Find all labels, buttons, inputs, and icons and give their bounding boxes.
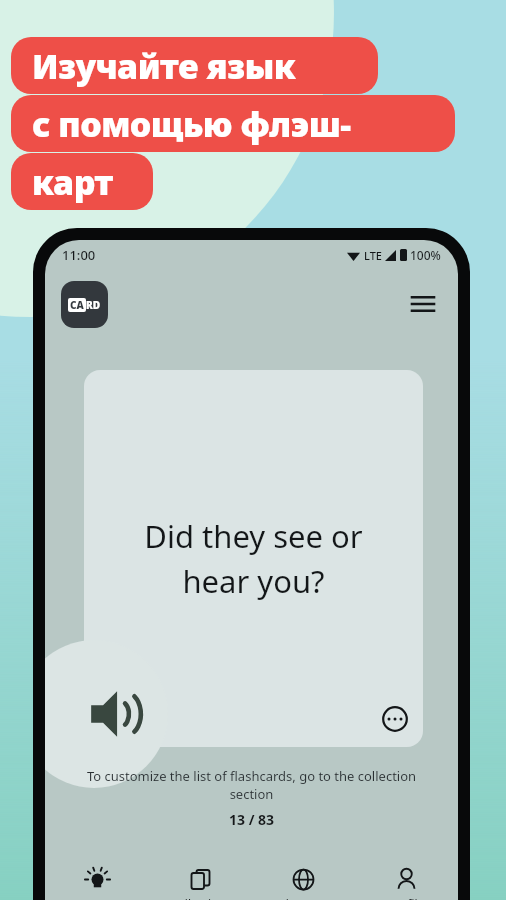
staticText: RD [86, 298, 101, 312]
staticText: Collections [170, 896, 232, 900]
staticText: Bloggers [278, 896, 329, 900]
staticText: Profile [388, 896, 425, 900]
staticText: 11:00 [62, 246, 96, 264]
staticText: To customize the list of flashcards, go … [83, 767, 420, 803]
staticText: LTE [364, 248, 382, 263]
staticText: Изучайте язык [32, 43, 296, 89]
staticText: CA [70, 298, 84, 312]
staticText: 13 / 83 [229, 810, 275, 829]
button[interactable]: Bloggers [252, 863, 355, 900]
staticText: 100% [410, 247, 441, 263]
button[interactable]: Learn [45, 863, 149, 900]
button[interactable]: Did they see or hear you? [84, 370, 423, 747]
button[interactable]: Collections [149, 863, 252, 900]
staticText: Did they see or hear you? [144, 515, 363, 602]
button[interactable]: More options [381, 705, 409, 733]
button[interactable]: Play audio [45, 640, 168, 788]
staticText: карт [32, 159, 113, 205]
button[interactable]: CA [61, 281, 108, 328]
button[interactable]: Menu [404, 285, 442, 323]
button[interactable]: Profile [355, 863, 458, 900]
staticText: с помощью флэш- [32, 101, 351, 147]
